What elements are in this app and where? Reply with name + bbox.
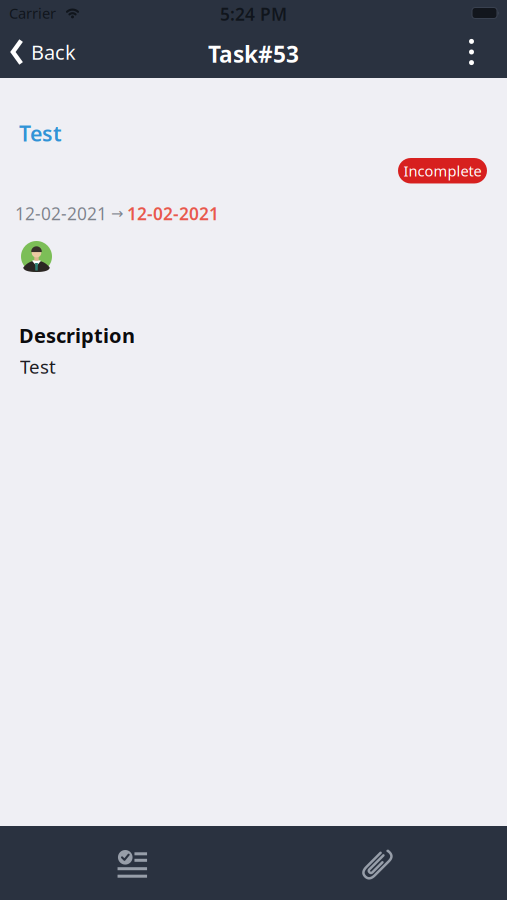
staticText: Carrier — [9, 3, 56, 23]
button[interactable]: Checklists — [0, 826, 253, 900]
staticText: 5:24 PM — [220, 2, 287, 25]
staticText: 12-02-2021 — [15, 202, 107, 225]
staticText: Test — [20, 354, 56, 379]
button[interactable]: Back — [0, 33, 76, 75]
button[interactable]: Assignee — [21, 241, 52, 272]
staticText: Incomplete — [403, 161, 481, 180]
staticText: Description — [19, 322, 135, 349]
button[interactable]: Attachments — [253, 826, 507, 900]
staticText: Back — [31, 39, 76, 65]
staticText: → — [111, 205, 123, 222]
staticText: 12-02-2021 — [127, 202, 219, 225]
button[interactable]: Test — [19, 119, 62, 147]
staticText: Task#53 — [208, 39, 299, 69]
button[interactable]: More options — [436, 33, 507, 75]
staticText: Test — [19, 119, 62, 147]
